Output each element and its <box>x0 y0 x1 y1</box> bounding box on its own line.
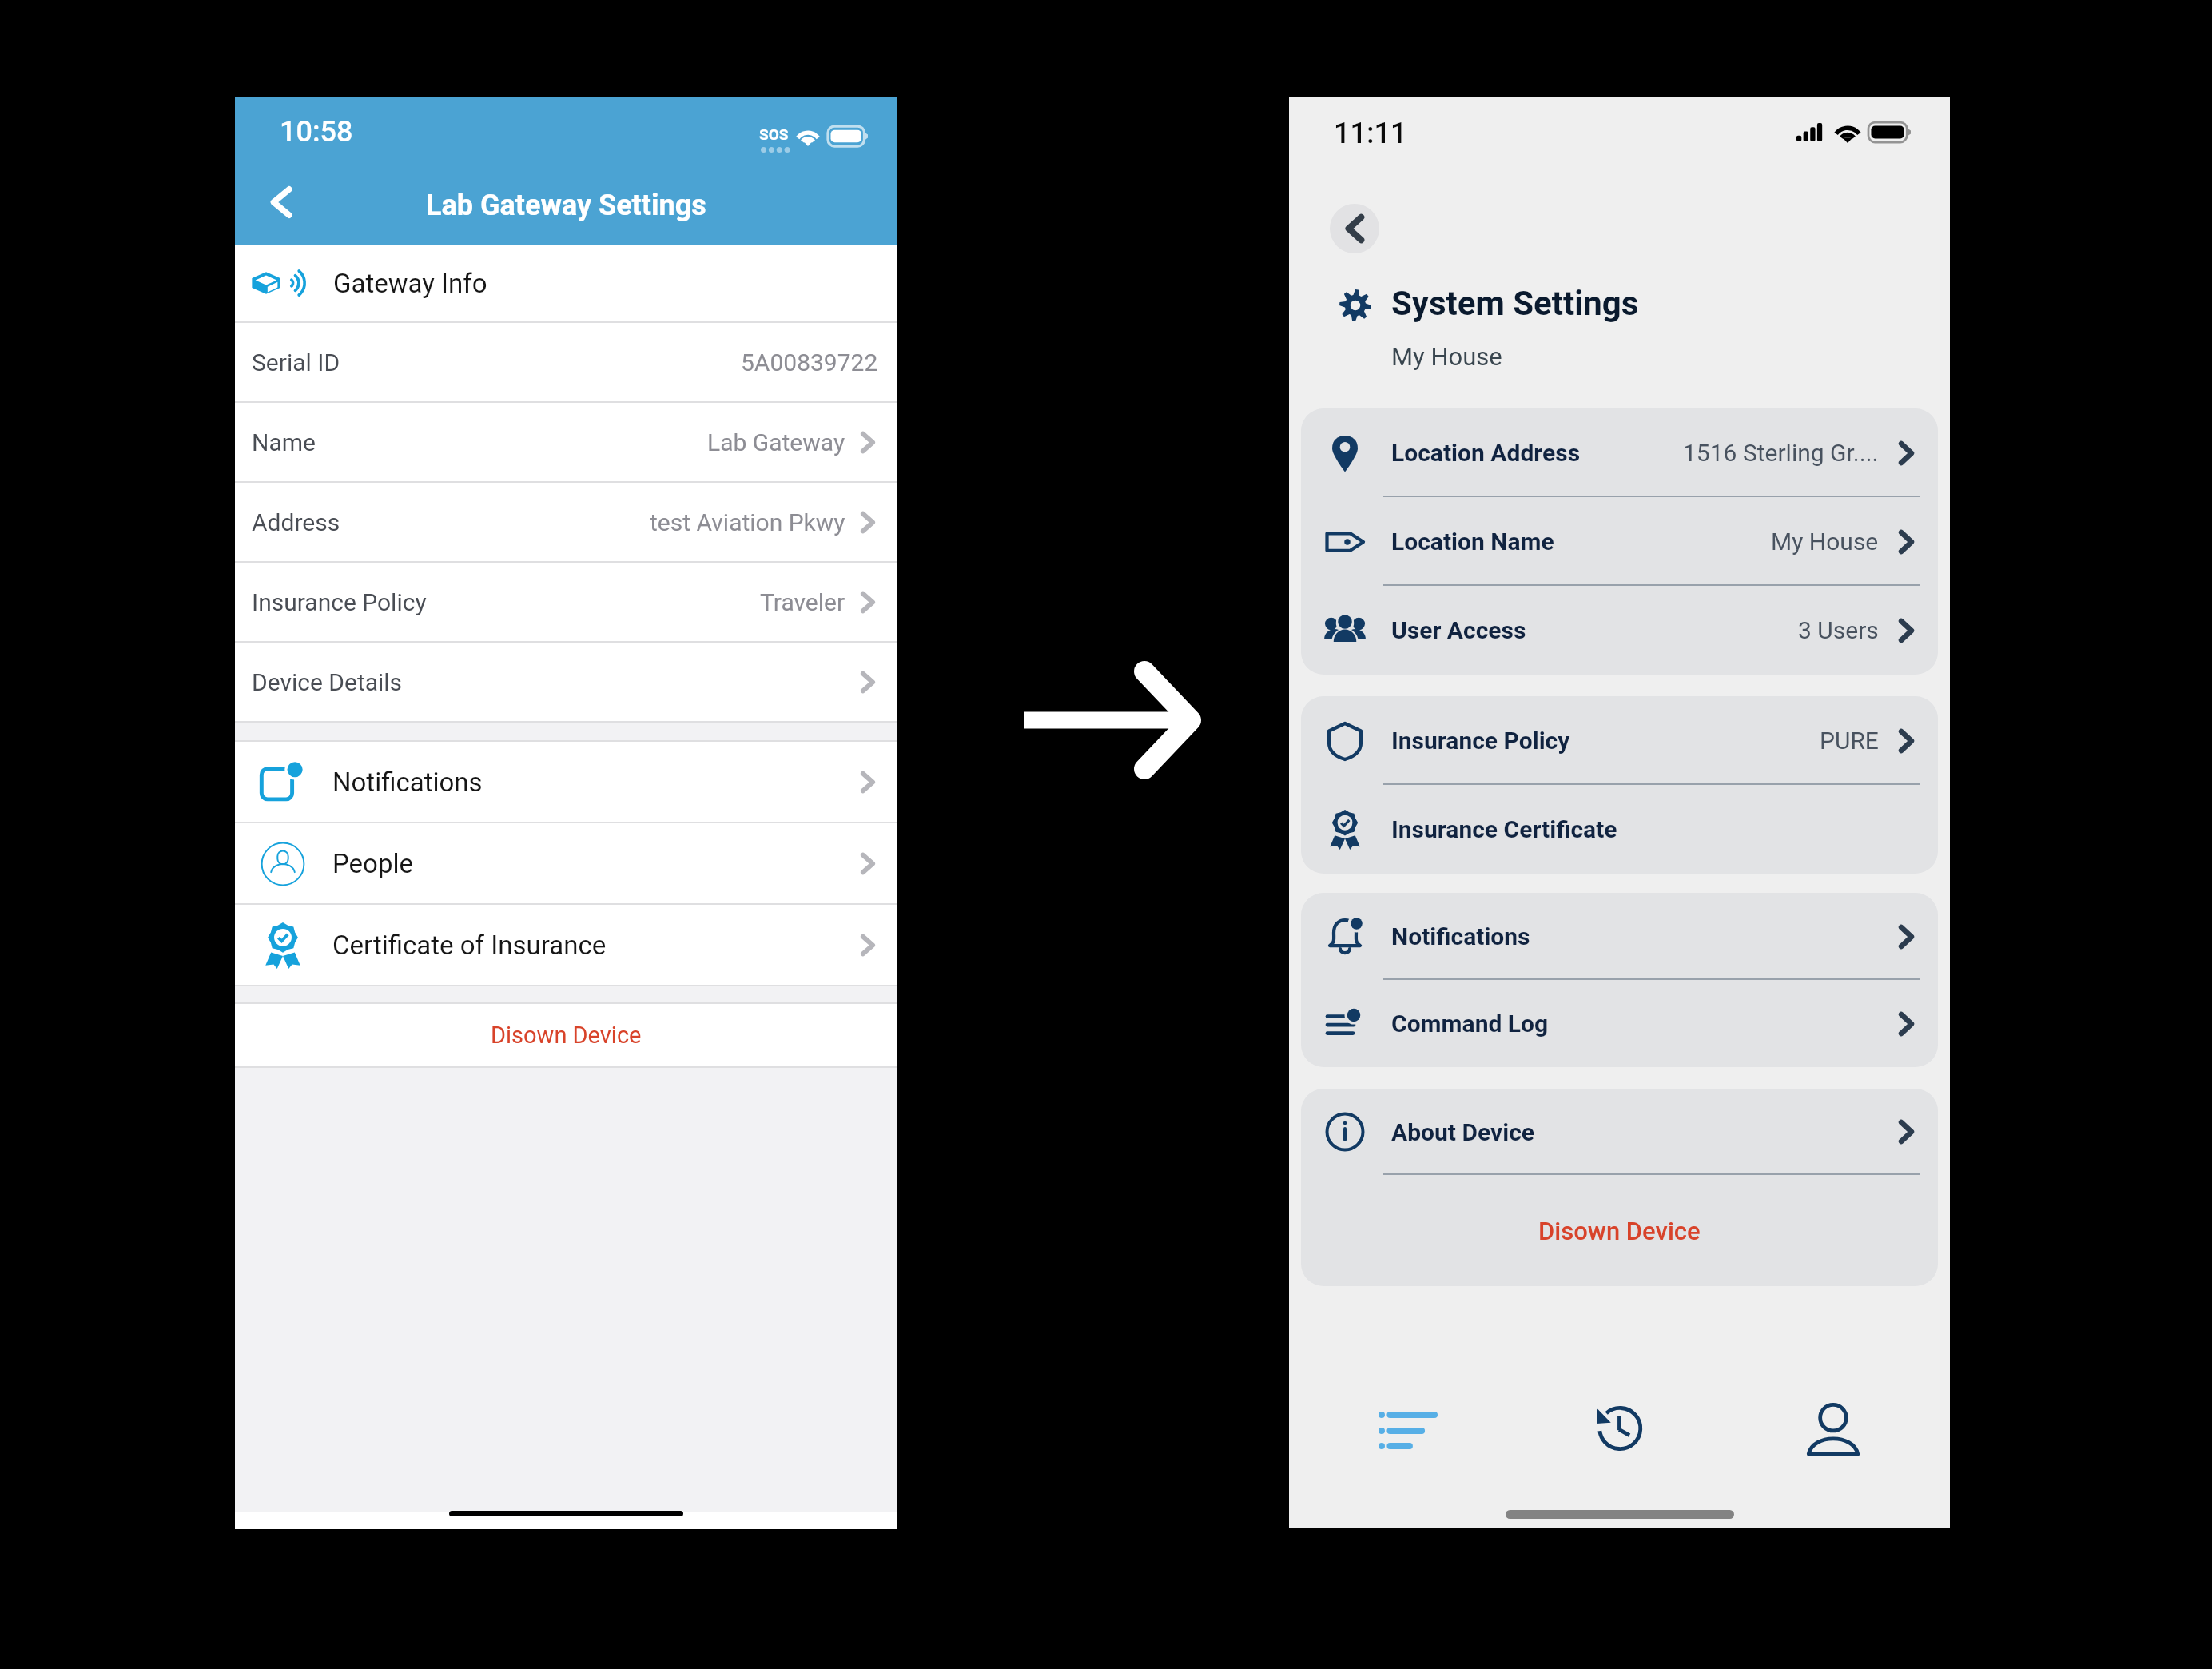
button[interactable]: User Access <box>1301 586 1938 675</box>
staticText: My House <box>1391 342 1502 371</box>
staticText: Serial ID <box>252 349 340 376</box>
button[interactable]: Location Address <box>1301 408 1938 497</box>
staticText: Location Name <box>1391 528 1554 556</box>
button[interactable]: Insurance Policy <box>1301 696 1938 785</box>
staticText: Disown Device <box>1538 1217 1701 1245</box>
staticText: People <box>332 848 413 879</box>
staticText: Location Address <box>1391 439 1581 467</box>
button[interactable]: About Device <box>1301 1089 1938 1175</box>
staticText: Disown Device <box>491 1022 642 1049</box>
staticText: 5A00839722 <box>741 349 878 376</box>
button[interactable]: Gateway Info <box>235 245 897 321</box>
button[interactable]: History <box>1573 1393 1663 1464</box>
button[interactable]: Disown Device <box>1301 1175 1938 1286</box>
staticText: System Settings <box>1391 284 1639 323</box>
staticText: Traveler <box>760 588 845 616</box>
staticText: 1516 Sterling Gr.... <box>1683 439 1879 467</box>
button[interactable]: People <box>235 823 897 903</box>
staticText: Insurance Policy <box>1391 727 1570 755</box>
button[interactable]: Notifications <box>235 742 897 822</box>
button[interactable]: Back <box>253 173 310 231</box>
staticText: 11:11 <box>1334 117 1407 150</box>
staticText: Name <box>252 428 316 456</box>
staticText: Notifications <box>1391 922 1530 950</box>
staticText: SOS <box>759 125 789 143</box>
button[interactable]: Notifications <box>1301 893 1938 980</box>
staticText: User Access <box>1391 616 1526 644</box>
button[interactable]: Command Log <box>1301 980 1938 1067</box>
staticText: 10:58 <box>280 115 353 149</box>
staticText: My House <box>1771 528 1879 556</box>
button[interactable]: Disown Device <box>235 1004 897 1066</box>
staticText: Notifications <box>332 767 483 798</box>
button[interactable]: Back <box>1330 204 1379 253</box>
staticText: About Device <box>1391 1118 1535 1146</box>
staticText: PURE <box>1820 727 1879 755</box>
staticText: 3 Users <box>1798 616 1879 644</box>
staticText: Address <box>252 508 340 536</box>
button[interactable]: Location Name <box>1301 497 1938 586</box>
staticText: Certificate of Insurance <box>332 930 607 961</box>
staticText: Device Details <box>252 668 403 696</box>
button[interactable]: Device Details <box>235 643 897 721</box>
staticText: Command Log <box>1391 1010 1549 1038</box>
button[interactable]: Name <box>235 403 897 481</box>
button[interactable]: Serial ID <box>235 323 897 401</box>
button[interactable]: List <box>1363 1395 1454 1465</box>
staticText: Lab Gateway <box>707 428 845 456</box>
staticText: Insurance Policy <box>252 588 427 616</box>
staticText: test Aviation Pkwy <box>650 508 845 536</box>
button[interactable]: Address <box>235 483 897 561</box>
staticText: Lab Gateway Settings <box>426 189 706 222</box>
button[interactable]: Profile <box>1788 1395 1878 1465</box>
button[interactable]: Certificate of Insurance <box>235 905 897 985</box>
button[interactable]: Insurance Certificate <box>1301 785 1938 874</box>
staticText: Gateway Info <box>333 268 487 299</box>
staticText: Insurance Certificate <box>1391 815 1617 843</box>
button[interactable]: Insurance Policy <box>235 563 897 641</box>
